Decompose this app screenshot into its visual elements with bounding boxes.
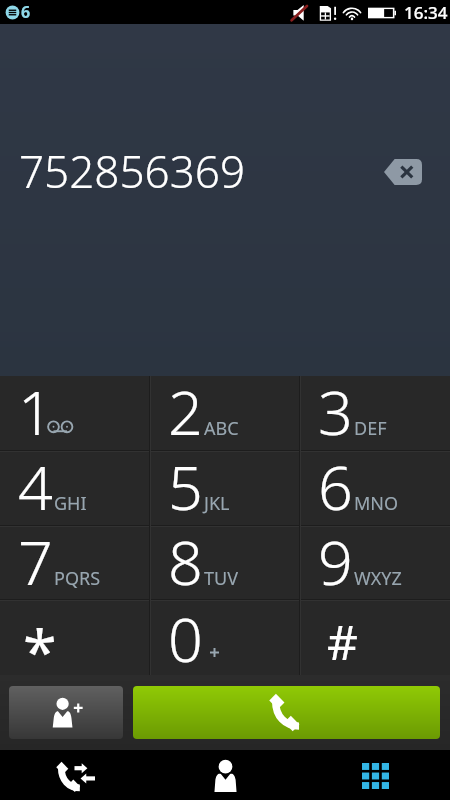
staticText: MNO	[354, 491, 399, 516]
staticText: 6	[21, 1, 31, 23]
button[interactable]: 9	[300, 526, 450, 601]
button[interactable]: #	[300, 600, 450, 675]
button[interactable]: 7	[0, 526, 150, 601]
button[interactable]: *	[0, 600, 150, 675]
staticText: 4	[18, 445, 53, 520]
staticText: TUV	[204, 566, 238, 591]
staticText: 5	[168, 445, 203, 520]
staticText: DEF	[354, 416, 387, 441]
staticText: JKL	[204, 491, 230, 516]
staticText: WXYZ	[354, 566, 402, 591]
button[interactable]: Add to contacts	[9, 686, 123, 739]
staticText: *	[23, 609, 57, 684]
button[interactable]: Backspace	[372, 147, 434, 197]
staticText: 16:34	[404, 1, 448, 24]
staticText: 0	[168, 597, 203, 672]
staticText: GHI	[54, 491, 87, 516]
staticText: 7	[18, 520, 53, 595]
staticText: 752856369	[19, 141, 246, 201]
button[interactable]: Dialpad	[300, 750, 450, 800]
button[interactable]: 2	[150, 376, 300, 451]
staticText: 2	[168, 370, 203, 445]
staticText: 1	[18, 370, 53, 445]
button[interactable]: 1	[0, 376, 150, 451]
button[interactable]: 4	[0, 451, 150, 526]
button[interactable]: Contacts	[150, 750, 300, 800]
button[interactable]: 8	[150, 526, 300, 601]
button[interactable]: 5	[150, 451, 300, 526]
staticText: 6	[318, 445, 353, 520]
staticText: 8	[168, 520, 203, 595]
staticText: 3	[318, 370, 353, 445]
button[interactable]: Call	[133, 686, 440, 739]
staticText: #	[327, 609, 359, 674]
button[interactable]: 6	[300, 451, 450, 526]
button[interactable]: Call history	[0, 750, 150, 800]
staticText: ABC	[204, 416, 239, 441]
button[interactable]: 3	[300, 376, 450, 451]
staticText: PQRS	[54, 566, 101, 591]
staticText: 9	[318, 520, 353, 595]
button[interactable]: 0	[150, 600, 300, 675]
